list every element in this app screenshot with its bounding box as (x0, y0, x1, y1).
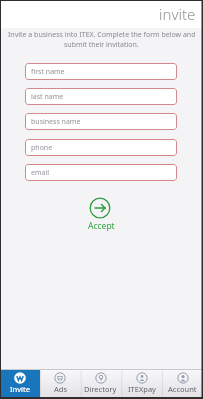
staticText: submit their invitation. (64, 40, 139, 50)
button[interactable]: first name (25, 63, 177, 80)
button[interactable]: business name (25, 113, 177, 130)
staticText: invite (159, 4, 196, 24)
button[interactable]: Ads (40, 369, 80, 399)
staticText: Invite (10, 384, 30, 394)
button[interactable]: Directory (80, 369, 121, 399)
staticText: Invite a business into ITEX. Complete th… (8, 30, 196, 40)
button[interactable]: last name (25, 88, 177, 105)
button[interactable] (89, 197, 111, 219)
staticText: phone (31, 143, 53, 153)
button[interactable]: ITEXpay (121, 369, 162, 399)
staticText: email (31, 168, 50, 178)
staticText: ITEXpay (128, 384, 156, 394)
button[interactable]: phone (25, 139, 177, 156)
staticText: Accept (88, 220, 115, 232)
button[interactable]: Account (162, 369, 203, 399)
button[interactable]: email (25, 164, 177, 181)
staticText: Account (168, 384, 197, 394)
staticText: Directory (84, 384, 117, 394)
staticText: Ads (54, 384, 67, 394)
button[interactable]: Invite (0, 369, 40, 399)
staticText: first name (31, 67, 65, 77)
staticText: business name (31, 117, 81, 127)
staticText: last name (31, 92, 64, 102)
